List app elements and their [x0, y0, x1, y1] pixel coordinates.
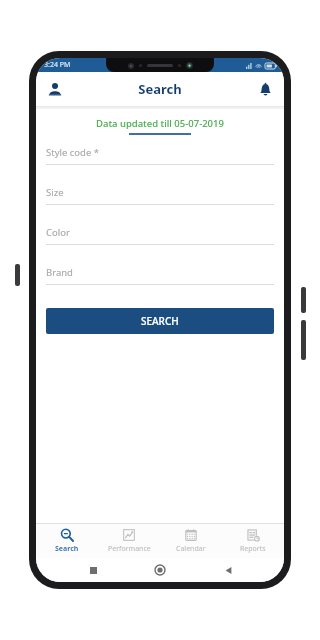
staticText: Search — [55, 544, 79, 554]
staticText: Search — [68, 80, 252, 98]
staticText: 3:24 PM — [44, 60, 71, 70]
staticText: SEARCH — [141, 314, 179, 328]
staticText: Calendar — [176, 544, 206, 554]
staticText: Style code * — [46, 146, 99, 159]
staticText: Data updated till 05-07-2019 — [96, 117, 224, 130]
button[interactable]: Calendar — [160, 524, 222, 558]
button[interactable]: Brand — [46, 266, 274, 285]
button[interactable]: Performance — [98, 524, 160, 558]
staticText: Color — [46, 226, 70, 239]
staticText: Performance — [108, 544, 151, 554]
staticText: Reports — [240, 544, 266, 554]
button[interactable]: Back — [217, 559, 239, 581]
button[interactable]: SEARCH — [46, 308, 274, 334]
button[interactable]: Notifications — [252, 76, 278, 102]
button[interactable]: Profile — [42, 76, 68, 102]
button[interactable]: Recents — [82, 559, 104, 581]
button[interactable]: Size — [46, 186, 274, 205]
button[interactable]: Home — [149, 559, 171, 581]
button[interactable]: Style code * — [46, 146, 274, 165]
button[interactable]: Reports — [222, 524, 284, 558]
staticText: Size — [46, 186, 64, 199]
button[interactable]: Search — [36, 524, 98, 558]
staticText: Brand — [46, 266, 73, 279]
button[interactable]: Color — [46, 226, 274, 245]
